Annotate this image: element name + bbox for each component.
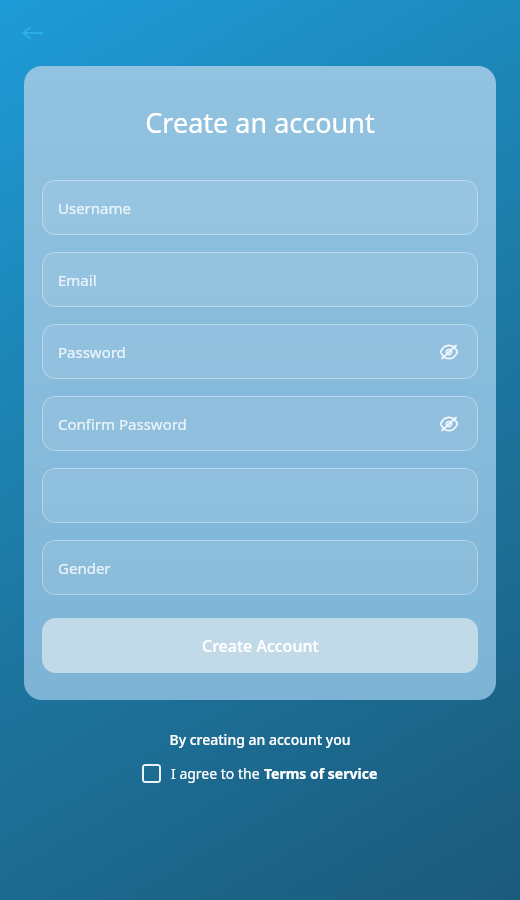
button[interactable]: Email: [42, 252, 478, 307]
button[interactable]: I agree to the: [140, 762, 380, 785]
button[interactable]: Toggle password visibility: [436, 339, 462, 365]
staticText: Email: [58, 270, 97, 290]
staticText: Create an account: [42, 104, 478, 141]
button[interactable]: Create Account: [42, 618, 478, 673]
button[interactable]: Toggle password visibility: [436, 411, 462, 437]
staticText: Create Account: [202, 635, 319, 657]
staticText: Username: [58, 198, 131, 218]
staticText: Terms of service: [264, 764, 378, 783]
button[interactable]: Gender: [42, 540, 478, 595]
staticText: By creating an account you: [0, 730, 520, 749]
staticText: Password: [58, 342, 126, 362]
staticText: Confirm Password: [58, 414, 187, 434]
button[interactable]: [42, 468, 478, 523]
staticText: I agree to the: [171, 764, 264, 783]
button[interactable]: Confirm Password: [42, 396, 478, 451]
staticText: Gender: [58, 558, 111, 578]
button[interactable]: Password: [42, 324, 478, 379]
button[interactable]: Username: [42, 180, 478, 235]
button[interactable]: Back: [10, 11, 54, 55]
